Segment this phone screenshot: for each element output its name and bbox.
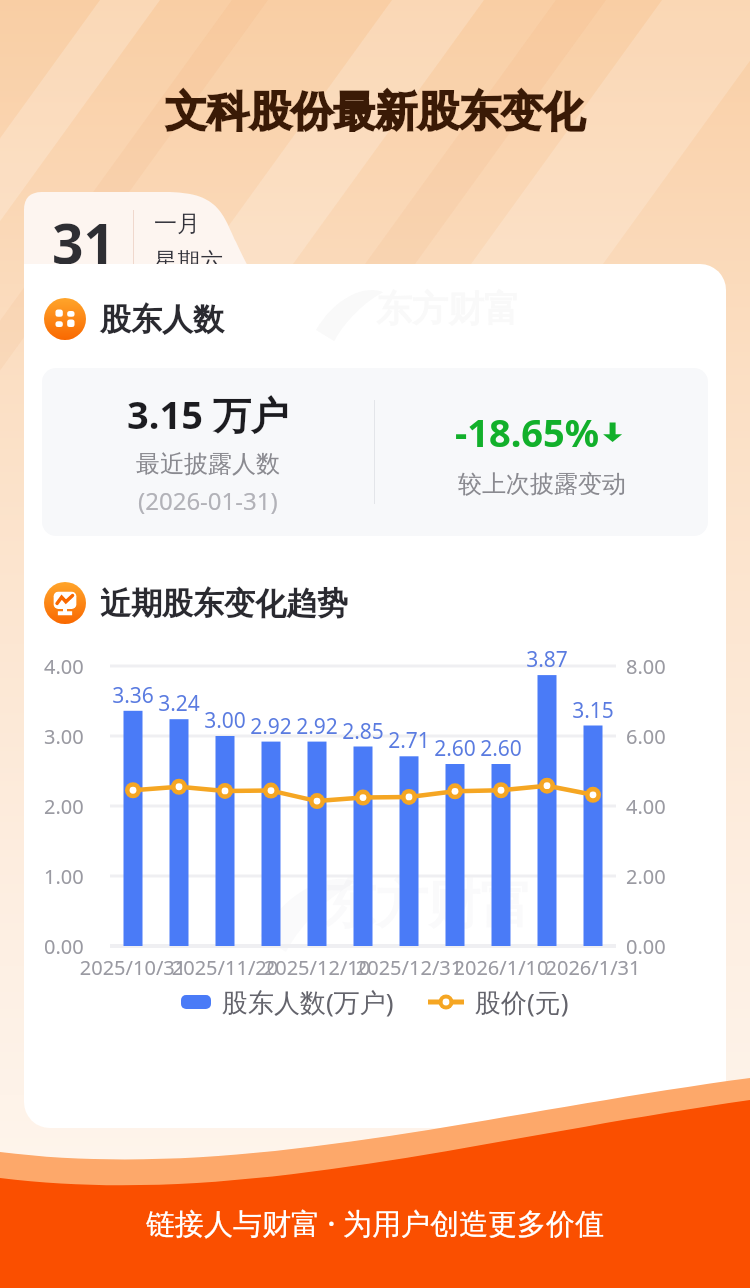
staticText: 31 [52,205,115,280]
staticText: 3.24 [156,689,202,718]
staticText: 2026/1/31 [535,954,651,981]
button[interactable]: 股东人数 [44,298,224,340]
staticText: 近期股东变化趋势 [100,584,348,623]
staticText: 2026/1/10 [443,954,559,981]
staticText: 2025/10/31 [75,954,191,981]
staticText: 2.60 [478,734,524,763]
staticText: 东方财富 [324,872,532,938]
staticText: (2026-01-31) [138,484,278,517]
staticText: 3.15 [570,696,616,725]
staticText: 6.00 [626,723,666,750]
staticText: 链接人与财富 · 为用户创造更多价值 [146,1203,604,1243]
staticText: 文科股份最新股东变化 [165,86,585,139]
staticText: 最近披露人数 [136,449,280,479]
staticText: 0.00 [626,933,666,960]
staticText: 一月 [154,209,200,238]
staticText: 3.00 [202,706,248,735]
staticText: 2.00 [626,863,666,890]
staticText: 0.00 [44,933,84,960]
staticText: 股东人数(万户) [222,984,394,1020]
staticText: 2.71 [386,726,432,755]
staticText: 3.00 [44,723,84,750]
other: 股东人数 [44,298,86,340]
staticText: 2.85 [340,717,386,746]
staticText: -18.65% [455,406,600,458]
staticText: 3.87 [524,645,570,674]
staticText: 2.60 [432,734,478,763]
staticText: 2.00 [44,793,84,820]
staticText: 4.00 [44,653,84,680]
staticText: 3.15 万户 [127,388,289,440]
staticText: 1.00 [44,863,84,890]
staticText: 2025/12/31 [351,954,467,981]
staticText: 股价(元) [475,984,569,1020]
button[interactable]: 近期股东变化趋势 [44,582,348,624]
staticText: 8.00 [626,653,666,680]
staticText: 2025/11/20 [167,954,283,981]
staticText: 2.92 [248,712,294,741]
staticText: 较上次披露变动 [458,469,626,499]
staticText: 4.00 [626,793,666,820]
other: 近期股东变化趋势 [44,582,86,624]
staticText: 星期六 [154,247,223,276]
staticText: 2.92 [294,712,340,741]
staticText: 2025/12/10 [259,954,375,981]
button[interactable]: 3.15 万户 [42,368,708,536]
staticText: 3.36 [110,681,156,710]
staticText: 股东人数 [100,300,224,339]
